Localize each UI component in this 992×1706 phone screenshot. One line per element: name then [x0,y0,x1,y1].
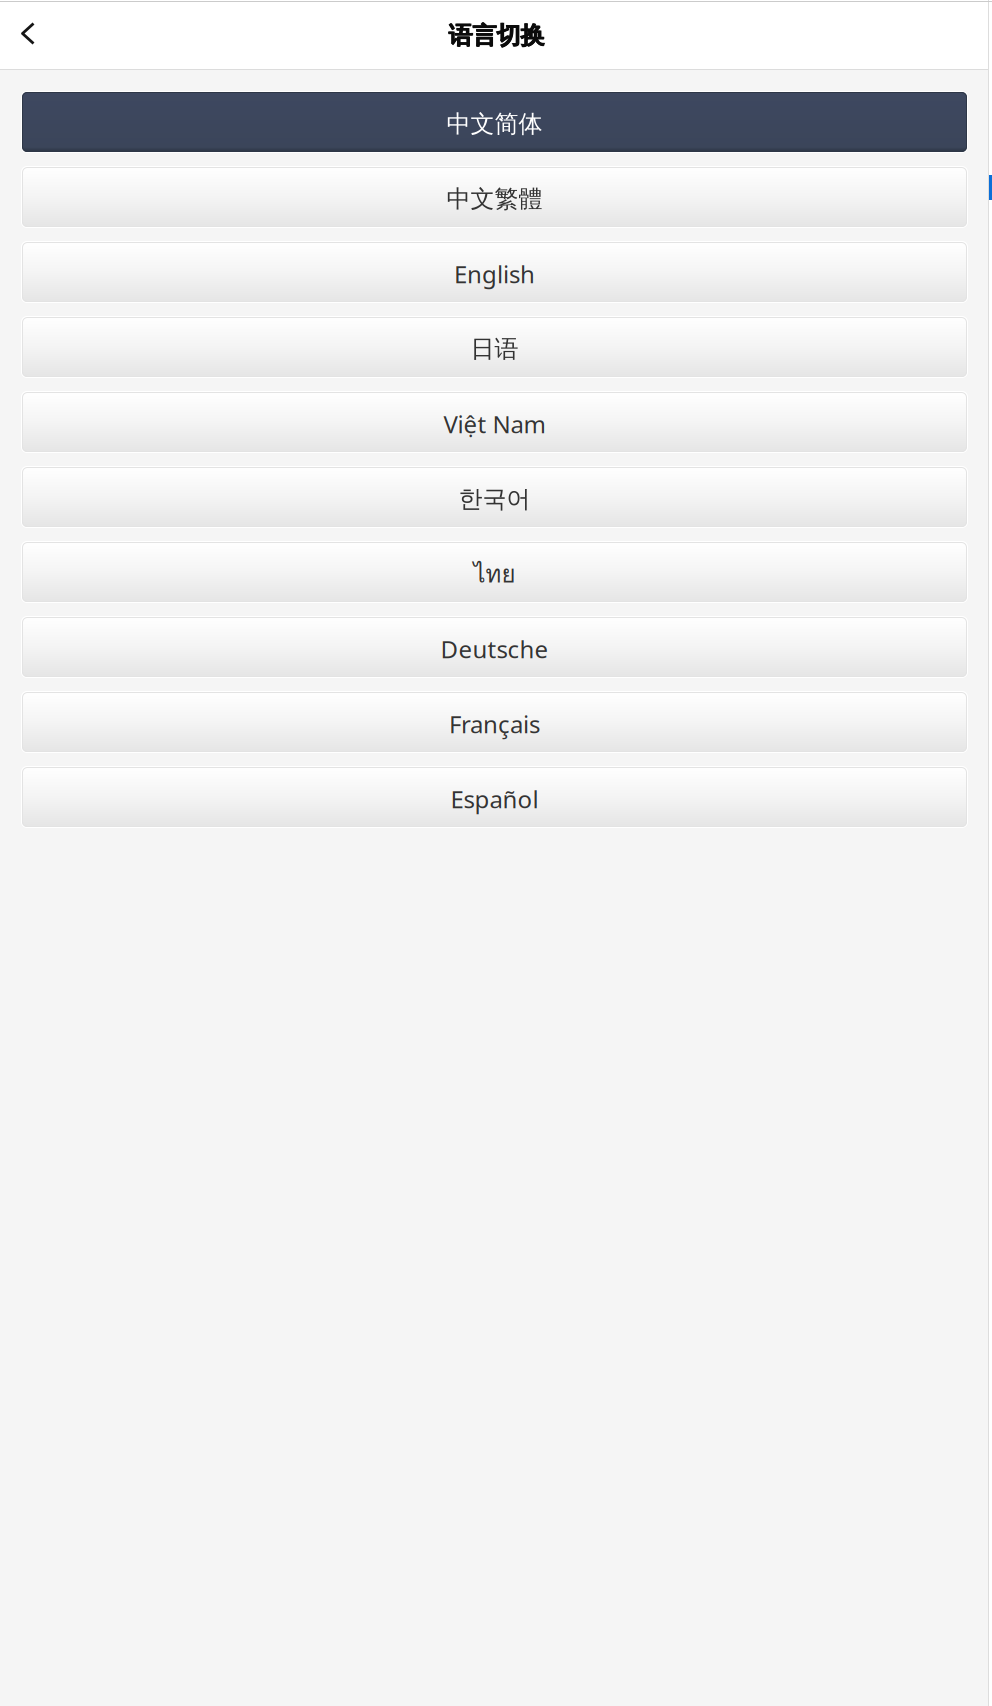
button[interactable]: 中文简体 [22,92,967,152]
button[interactable]: English [22,242,967,302]
staticText: Español [450,783,538,815]
staticText: 语言切换 [448,21,544,50]
staticText: 日语 [470,334,518,364]
staticText: 语言切换 [449,21,545,50]
button[interactable]: 中文繁體 [22,167,967,227]
staticText: 中文简体 [446,109,542,139]
staticText: ไทย [473,555,515,593]
button[interactable]: 日语 [22,317,967,377]
staticText: 中文繁體 [446,184,542,214]
staticText: English [454,258,535,290]
button[interactable]: Back [5,13,49,57]
staticText: Français [449,708,540,740]
button[interactable]: Español [22,767,967,827]
button[interactable]: Deutsche [22,617,967,677]
staticText: 语言切换 [448,21,544,51]
button[interactable]: ไทย [22,542,967,602]
button[interactable]: Việt Nam [22,392,967,452]
staticText: Việt Nam [443,408,545,440]
button[interactable]: 한국어 [22,467,967,527]
button[interactable]: Français [22,692,967,752]
staticText: Deutsche [440,633,548,665]
staticText: 한국어 [458,484,530,514]
